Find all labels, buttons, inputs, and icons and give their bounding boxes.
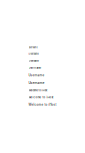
staticText: Welcome to iHost	[28, 89, 47, 92]
staticText: Username	[28, 73, 44, 77]
staticText: Welcome to iHost	[28, 96, 53, 99]
staticText: Username	[28, 46, 37, 49]
staticText: Username	[28, 59, 38, 62]
staticText: Username	[28, 53, 38, 55]
staticText: Username	[28, 66, 41, 69]
staticText: Welcome to iHost	[28, 103, 56, 106]
staticText: Username	[28, 81, 44, 85]
